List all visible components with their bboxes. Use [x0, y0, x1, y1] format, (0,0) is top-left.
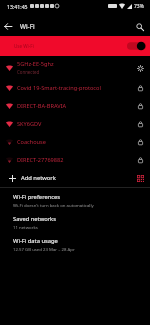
staticText: 13:41:45: [7, 3, 28, 10]
button[interactable]: Use Wi-Fi: [0, 36, 150, 56]
button[interactable]: Wi-Fi preferences: [0, 189, 150, 211]
button[interactable]: Saved networks: [0, 211, 150, 233]
staticText: Use Wi-Fi: [14, 43, 34, 49]
other: Use Wi-Fi toggle: [127, 40, 146, 52]
staticText: 73%: [134, 3, 144, 10]
staticText: Saved networks: [13, 215, 56, 223]
staticText: Wi-Fi: [20, 22, 35, 31]
staticText: Add network: [21, 174, 134, 182]
button[interactable]: Navigate up: [0, 19, 15, 34]
staticText: DIRECT-27769882: [17, 156, 134, 164]
button[interactable]: SKY6GDV: [0, 115, 150, 133]
button[interactable]: DIRECT-27769882: [0, 151, 150, 169]
staticText: Connected: [17, 69, 40, 75]
staticText: 12.57 GB used 23 Mar – 28 Apr: [13, 246, 75, 252]
staticText: 5GHz-EE-5ghz: [17, 60, 54, 68]
button[interactable]: Covid 19-Smart-tracing-protocol: [0, 79, 150, 97]
staticText: Covid 19-Smart-tracing-protocol: [17, 84, 134, 92]
button[interactable]: Coachouse: [0, 133, 150, 151]
button[interactable]: Scan QR code: [134, 172, 146, 184]
staticText: Wi-Fi preferences: [13, 193, 61, 201]
staticText: DIRECT-BA-BRAVIA: [17, 102, 134, 110]
staticText: Wi-Fi data usage: [13, 237, 58, 245]
button[interactable]: 5GHz-EE-5ghz: [0, 56, 150, 79]
button[interactable]: Network settings: [134, 62, 146, 74]
button[interactable]: Wi-Fi data usage: [0, 233, 150, 255]
button[interactable]: Add network: [0, 169, 150, 187]
staticText: SKY6GDV: [17, 120, 134, 128]
button[interactable]: DIRECT-BA-BRAVIA: [0, 97, 150, 115]
staticText: Coachouse: [17, 138, 134, 146]
staticText: Wi-Fi doesn't turn back on automatically: [13, 202, 94, 208]
staticText: 11 networks: [13, 224, 38, 230]
button[interactable]: Search: [130, 17, 150, 37]
